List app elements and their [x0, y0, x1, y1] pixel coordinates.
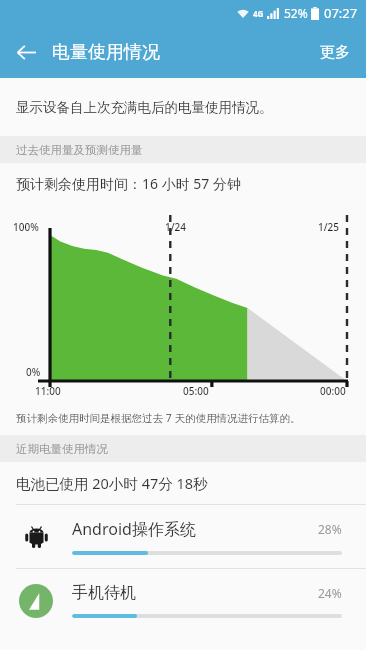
staticText: 24% — [318, 585, 342, 601]
staticText: 28% — [318, 521, 342, 537]
button[interactable]: Back — [0, 26, 52, 78]
staticText: 100% — [13, 220, 39, 234]
staticText: 电池已使用 20小时 47分 18秒 — [16, 473, 208, 493]
staticText: 1/25 — [318, 220, 340, 234]
staticText: Android操作系统 — [72, 518, 318, 540]
staticText: 预计剩余使用时间是根据您过去 7 天的使用情况进行估算的。 — [16, 411, 301, 425]
staticText: 手机待机 — [72, 583, 318, 603]
staticText: 11:00 — [35, 384, 61, 398]
staticText: 0% — [26, 365, 41, 379]
button[interactable]: Android操作系统 — [0, 505, 366, 568]
staticText: 00:00 — [320, 384, 346, 398]
staticText: 07:27 — [324, 4, 358, 22]
staticText: 05:00 — [183, 384, 209, 398]
staticText: 预计剩余使用时间：16 小时 57 分钟 — [16, 174, 241, 193]
staticText: 显示设备自上次充满电后的电量使用情况。 — [16, 99, 273, 116]
button[interactable]: 手机待机 — [0, 569, 366, 632]
staticText: 52% — [284, 5, 308, 21]
staticText: 更多 — [320, 43, 350, 62]
staticText: 近期电量使用情况 — [16, 442, 108, 456]
staticText: 电量使用情况 — [52, 41, 160, 64]
button[interactable]: 更多 — [304, 26, 366, 78]
staticText: 过去使用量及预测使用量 — [16, 143, 143, 157]
staticText: 4G — [253, 8, 264, 19]
staticText: 1/24 — [165, 220, 187, 234]
